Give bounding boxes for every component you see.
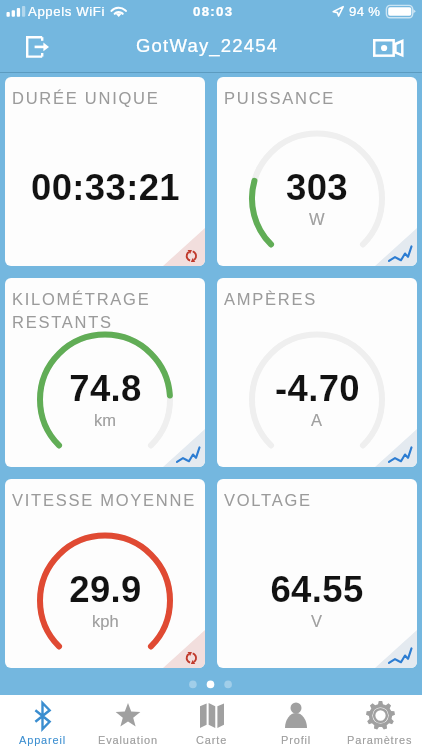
button[interactable]: Réinitialiser: [163, 228, 205, 266]
staticText: A: [311, 411, 323, 429]
button[interactable]: Profil: [254, 695, 338, 750]
button[interactable]: Appareil: [0, 695, 85, 750]
button[interactable]: Déconnexion: [26, 27, 62, 67]
button[interactable]: Réinitialiser: [163, 630, 205, 668]
staticText: km: [94, 411, 116, 429]
staticText: Paramètres: [347, 734, 413, 746]
staticText: Evaluation: [98, 734, 158, 746]
staticText: AMPÈRES: [224, 290, 317, 308]
button[interactable]: Carte: [170, 695, 254, 750]
staticText: 00:33:21: [31, 167, 180, 208]
button[interactable]: Graphique: [163, 429, 205, 467]
button[interactable]: Paramètres: [338, 695, 422, 750]
button[interactable]: Graphique: [375, 228, 417, 266]
staticText: DURÉE UNIQUE: [12, 89, 160, 107]
staticText: VOLTAGE: [224, 491, 312, 509]
staticText: -4.70: [275, 368, 360, 409]
staticText: 303: [286, 167, 348, 208]
staticText: PUISSANCE: [224, 89, 336, 107]
staticText: 29.9: [69, 569, 142, 610]
staticText: 64.55: [270, 569, 364, 610]
button[interactable]: Enregistrer une vidéo: [368, 27, 408, 67]
staticText: Appels WiFi: [28, 4, 105, 19]
staticText: VITESSE MOYENNE: [12, 491, 196, 509]
staticText: GotWay_22454: [136, 35, 279, 56]
button[interactable]: Graphique: [375, 429, 417, 467]
staticText: kph: [92, 612, 119, 630]
staticText: 74.8: [69, 368, 142, 409]
staticText: V: [311, 612, 323, 630]
button[interactable]: Evaluation: [85, 695, 170, 750]
staticText: W: [309, 210, 325, 228]
staticText: KILOMÉTRAGE RESTANTS: [12, 290, 151, 332]
button[interactable]: Graphique: [375, 630, 417, 668]
staticText: 94 %: [349, 4, 381, 19]
button[interactable]: PUISSANCE: [217, 77, 417, 266]
button[interactable]: VITESSE MOYENNE: [5, 479, 205, 668]
staticText: Carte: [196, 734, 228, 746]
button[interactable]: DURÉE UNIQUE: [5, 77, 205, 266]
staticText: Appareil: [19, 734, 67, 746]
button[interactable]: KILOMÉTRAGE RESTANTS: [5, 278, 205, 467]
staticText: Profil: [281, 734, 312, 746]
button[interactable]: VOLTAGE: [217, 479, 417, 668]
staticText: 08:03: [193, 4, 234, 19]
button[interactable]: AMPÈRES: [217, 278, 417, 467]
